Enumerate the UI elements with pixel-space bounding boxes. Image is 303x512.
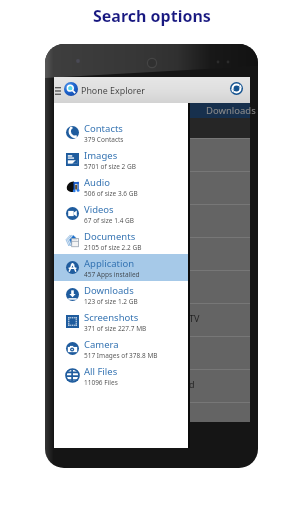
staticText: Audio <box>84 176 110 189</box>
button[interactable]: Videos <box>54 200 188 227</box>
staticText: Downloads <box>206 104 256 117</box>
staticText: Phone Explorer <box>81 84 146 96</box>
staticText: Documents <box>84 230 136 243</box>
staticText: 11096 Files <box>84 378 118 387</box>
staticText: 2105 of size 2.2 GB <box>84 243 142 252</box>
button[interactable]: Screenshots <box>54 308 188 335</box>
staticText: 517 Images of 378.8 MB <box>84 351 158 360</box>
staticText: Videos <box>84 203 114 216</box>
staticText: TV <box>189 312 200 324</box>
button[interactable]: Refresh <box>226 78 246 98</box>
button[interactable]: Images <box>54 146 188 173</box>
button[interactable]: Downloads <box>54 281 188 308</box>
staticText: Screenshots <box>84 311 139 324</box>
staticText: 457 Apps installed <box>84 270 140 279</box>
staticText: 371 of size 227.7 MB <box>84 324 147 333</box>
staticText: Application <box>84 257 135 270</box>
button[interactable]: Audio <box>54 173 188 200</box>
staticText: 67 of size 1.4 GB <box>84 216 135 225</box>
button[interactable]: Contacts <box>54 119 188 146</box>
button[interactable]: Menu <box>54 80 61 100</box>
staticText: Search options <box>93 5 211 27</box>
staticText: 506 of size 3.6 GB <box>84 189 138 198</box>
staticText: 123 of size 1.2 GB <box>84 297 138 306</box>
staticText: Contacts <box>84 122 123 135</box>
staticText: Camera <box>84 338 119 351</box>
button[interactable]: All Files <box>54 362 188 389</box>
staticText: 379 Contacts <box>84 135 124 144</box>
button[interactable]: Documents <box>54 227 188 254</box>
staticText: 5701 of size 2 GB <box>84 162 136 171</box>
button[interactable]: Application <box>54 254 188 281</box>
staticText: Images <box>84 149 118 162</box>
staticText: All Files <box>84 365 118 378</box>
staticText: d <box>189 378 195 390</box>
button[interactable]: Camera <box>54 335 188 362</box>
staticText: Downloads <box>84 284 134 297</box>
